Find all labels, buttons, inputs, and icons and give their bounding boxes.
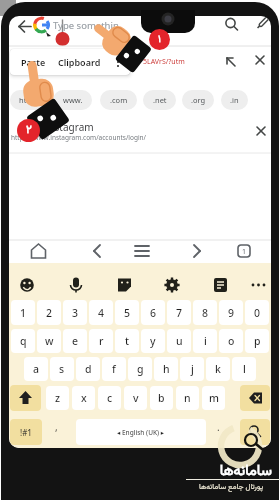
- button[interactable]: l: [232, 357, 256, 381]
- button[interactable]: .com: [100, 90, 137, 110]
- staticText: s: [59, 362, 65, 376]
- button[interactable]: .in: [221, 90, 248, 110]
- button[interactable]: [217, 16, 245, 38]
- staticText: .: [217, 420, 220, 434]
- button[interactable]: 8: [193, 300, 217, 325]
- button[interactable]: [249, 16, 271, 38]
- button[interactable]: o: [219, 329, 243, 353]
- button[interactable]: c: [98, 386, 121, 410]
- button[interactable]: w: [37, 329, 61, 353]
- button[interactable]: .net: [143, 90, 176, 110]
- button[interactable]: i: [193, 329, 217, 353]
- button[interactable]: !#1: [10, 419, 42, 445]
- button[interactable]: h: [154, 357, 178, 381]
- button[interactable]: 1: [11, 300, 35, 325]
- button[interactable]: .org: [182, 90, 214, 110]
- button[interactable]: k: [206, 357, 230, 381]
- staticText: i: [204, 334, 207, 348]
- button[interactable]: j: [180, 357, 204, 381]
- staticText: Instagram: [45, 120, 94, 134]
- staticText: 2: [46, 306, 53, 320]
- button[interactable]: 7: [167, 300, 191, 325]
- button[interactable]: b: [150, 386, 173, 410]
- staticText: y: [150, 334, 156, 348]
- button[interactable]: [11, 16, 39, 44]
- staticText: q: [20, 334, 27, 348]
- staticText: سامانه‌ها: [188, 460, 272, 483]
- staticText: www.: [63, 95, 83, 105]
- button[interactable]: [240, 419, 270, 445]
- staticText: 9: [228, 306, 235, 320]
- staticText: a: [33, 362, 40, 376]
- button[interactable]: s: [50, 357, 74, 381]
- button[interactable]: p: [245, 329, 269, 353]
- button[interactable]: v: [124, 386, 147, 410]
- button[interactable]: 0: [245, 300, 269, 325]
- staticText: o: [228, 334, 235, 348]
- button[interactable]: r: [89, 329, 113, 353]
- staticText: 1: [242, 247, 247, 257]
- button[interactable]: [128, 238, 156, 264]
- staticText: v: [133, 391, 139, 405]
- staticText: m: [209, 391, 219, 405]
- staticText: z: [55, 391, 61, 405]
- button[interactable]: [159, 274, 183, 296]
- button[interactable]: 6: [141, 300, 165, 325]
- button[interactable]: 9: [219, 300, 243, 325]
- button[interactable]: www.: [53, 90, 92, 110]
- button[interactable]: [183, 238, 211, 264]
- button[interactable]: u: [167, 329, 191, 353]
- button[interactable]: [15, 274, 39, 296]
- button[interactable]: d: [76, 357, 100, 381]
- button[interactable]: 3: [63, 300, 87, 325]
- button[interactable]: Instagram: [9, 114, 249, 150]
- button[interactable]: x: [72, 386, 95, 410]
- button[interactable]: [63, 274, 87, 296]
- button[interactable]: t: [115, 329, 139, 353]
- staticText: 1: [20, 306, 27, 320]
- staticText: k: [215, 362, 221, 376]
- button[interactable]: [255, 274, 271, 296]
- button[interactable]: [111, 274, 135, 296]
- button[interactable]: z: [46, 386, 69, 410]
- staticText: پورتال جامع سامانه‌ها: [184, 481, 278, 493]
- staticText: 6: [150, 306, 157, 320]
- staticText: w: [45, 334, 54, 348]
- button[interactable]: [207, 274, 231, 296]
- button[interactable]: g: [128, 357, 152, 381]
- button[interactable]: http..: [10, 90, 46, 110]
- staticText: !#1: [20, 427, 32, 438]
- staticText: x: [81, 391, 87, 405]
- button[interactable]: [139, 50, 245, 74]
- button[interactable]: y: [141, 329, 165, 353]
- button[interactable]: [83, 238, 111, 264]
- button[interactable]: 5: [115, 300, 139, 325]
- button[interactable]: q: [11, 329, 35, 353]
- button[interactable]: a: [24, 357, 48, 381]
- staticText: r: [99, 334, 104, 348]
- staticText: n: [184, 391, 191, 405]
- button[interactable]: [249, 50, 271, 72]
- button[interactable]: Paste: [10, 49, 130, 75]
- button[interactable]: [240, 385, 270, 411]
- staticText: h: [163, 362, 170, 376]
- button[interactable]: 2: [37, 300, 61, 325]
- button[interactable]: f: [102, 357, 126, 381]
- button[interactable]: [24, 238, 54, 264]
- button[interactable]: n: [176, 386, 199, 410]
- staticText: ◂ English (UK) ▸: [117, 428, 165, 437]
- button[interactable]: 4: [89, 300, 113, 325]
- button[interactable]: [230, 238, 258, 264]
- button[interactable]: ◂ English (UK) ▸: [76, 419, 206, 445]
- button[interactable]: [249, 120, 271, 142]
- button[interactable]: m: [202, 386, 225, 410]
- staticText: http..: [19, 95, 38, 105]
- button[interactable]: e: [63, 329, 87, 353]
- staticText: .in: [230, 95, 239, 105]
- button[interactable]: [10, 385, 41, 411]
- staticText: ,: [55, 420, 58, 434]
- staticText: c: [107, 391, 113, 405]
- staticText: d: [85, 362, 92, 376]
- staticText: 4: [98, 306, 105, 320]
- staticText: e: [72, 334, 79, 348]
